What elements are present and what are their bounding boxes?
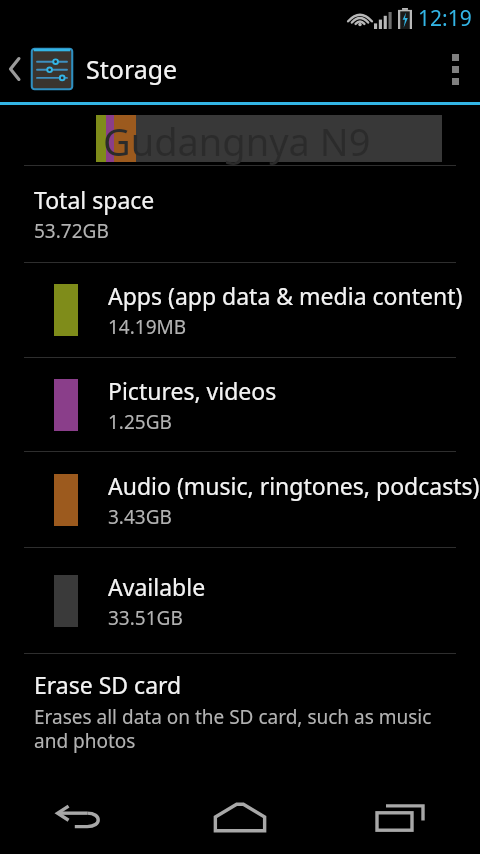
button[interactable]: Pictures, videos	[0, 358, 480, 451]
staticText: Pictures, videos	[108, 375, 277, 406]
staticText: 33.51GB	[108, 605, 183, 631]
staticText: Total space	[34, 184, 155, 215]
staticText: 3.43GB	[108, 504, 172, 530]
staticText: 53.72GB	[34, 218, 109, 244]
button[interactable]: Available	[0, 548, 480, 653]
staticText: Gudangnya N9	[103, 115, 371, 167]
staticText: Storage	[86, 52, 178, 86]
staticText: 14.19MB	[108, 314, 187, 340]
staticText: Apps (app data & media content)	[108, 280, 463, 311]
button[interactable]: Home	[160, 780, 320, 854]
button[interactable]: Total space	[0, 166, 480, 262]
button[interactable]: More options	[430, 36, 480, 102]
button[interactable]: Back	[0, 780, 160, 854]
staticText: Audio (music, ringtones, podcasts)	[108, 470, 480, 501]
button[interactable]: Navigate up	[0, 36, 75, 102]
staticText: 12:19	[418, 4, 472, 33]
button[interactable]: Erase SD card	[0, 654, 480, 765]
button[interactable]: Apps (app data & media content)	[0, 263, 480, 357]
staticText: Erases all data on the SD card, such as …	[34, 704, 440, 753]
staticText: 1.25GB	[108, 409, 172, 435]
button[interactable]: Audio (music, ringtones, podcasts)	[0, 452, 480, 547]
staticText: Erase SD card	[34, 669, 182, 700]
button[interactable]: Recent apps	[320, 780, 480, 854]
staticText: Available	[108, 571, 206, 602]
